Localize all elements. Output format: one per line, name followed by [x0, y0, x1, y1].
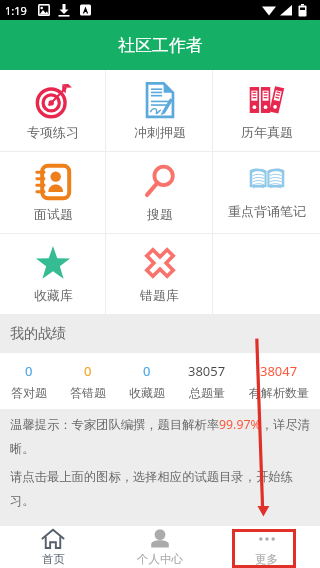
staticText: 收藏库 [34, 287, 73, 303]
button[interactable]: 更多 [213, 526, 320, 568]
staticText: 38047 [260, 362, 298, 380]
staticText: 首页 [42, 552, 65, 566]
staticText: 收藏题 [129, 385, 165, 400]
staticText: 温馨提示：专家团队编撰，题目解析率99.97%，详尽清晰。 [10, 416, 311, 457]
button[interactable]: 0 [11, 362, 47, 400]
button[interactable]: 重点背诵笔记 [213, 152, 320, 233]
button[interactable]: 0 [70, 362, 106, 400]
staticText: 专项练习 [27, 124, 79, 140]
staticText: 冲刺押题 [134, 124, 186, 140]
button[interactable]: 面试题 [0, 152, 106, 233]
staticText: 0 [84, 362, 92, 380]
button[interactable]: 个人中心 [106, 526, 213, 568]
staticText: 1:19 [5, 3, 27, 18]
button[interactable]: 收藏库 [0, 234, 106, 314]
staticText: 0 [25, 362, 33, 380]
button[interactable]: 专项练习 [0, 70, 106, 151]
staticText: 历年真题 [241, 124, 293, 140]
staticText: 更多 [255, 552, 278, 566]
staticText: 我的战绩 [10, 325, 66, 343]
button[interactable]: 首页 [0, 526, 106, 568]
staticText: 社区工作者 [118, 35, 203, 56]
staticText: 搜题 [147, 206, 173, 222]
staticText: 答错题 [70, 385, 106, 400]
staticText: 38057 [188, 362, 226, 380]
staticText: 错题库 [140, 287, 179, 303]
button[interactable]: 0 [129, 362, 165, 400]
staticText: 有解析数量 [249, 385, 309, 400]
staticText: 0 [143, 362, 151, 380]
staticText: 个人中心 [137, 552, 183, 566]
button[interactable]: 38057 [188, 362, 226, 400]
staticText: 答对题 [11, 385, 47, 400]
staticText: 请点击最上面的图标，选择相应的试题目录，开始练习。 [10, 469, 311, 509]
staticText: 重点背诵笔记 [228, 203, 306, 219]
staticText: 面试题 [34, 206, 73, 222]
button[interactable]: 冲刺押题 [106, 70, 213, 151]
button[interactable]: 38047 [249, 362, 309, 400]
button[interactable]: 搜题 [106, 152, 213, 233]
staticText: 总题量 [189, 385, 225, 400]
button[interactable]: 错题库 [106, 234, 213, 314]
button[interactable]: 历年真题 [213, 70, 320, 151]
